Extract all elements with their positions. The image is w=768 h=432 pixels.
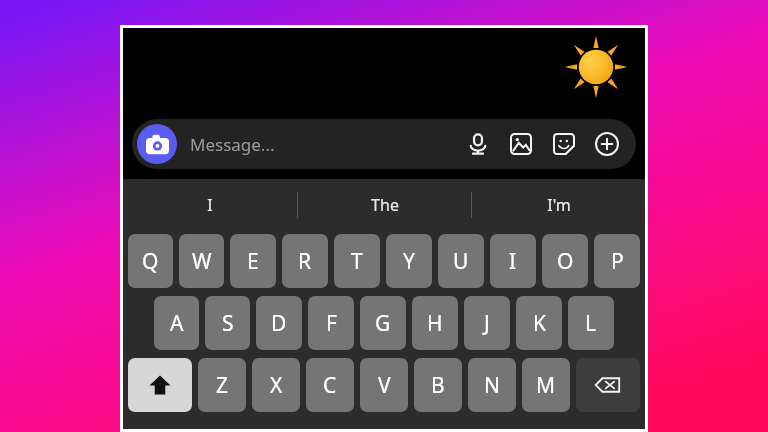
staticText: J [484, 309, 490, 338]
button[interactable]: More options [590, 127, 624, 161]
staticText: F [326, 309, 337, 338]
staticText: H [427, 309, 443, 338]
button[interactable]: Voice message [461, 127, 495, 161]
button[interactable]: Shift [128, 358, 192, 412]
staticText: K [533, 309, 546, 338]
staticText: X [270, 371, 283, 400]
button[interactable]: N [468, 358, 516, 412]
button[interactable]: K [516, 296, 562, 350]
staticText: G [375, 309, 391, 338]
staticText: Z [216, 371, 229, 400]
button[interactable]: Camera [137, 124, 177, 164]
button[interactable]: V [360, 358, 408, 412]
button[interactable]: B [414, 358, 462, 412]
staticText: Message... [190, 133, 275, 156]
button[interactable]: P [594, 234, 640, 288]
button[interactable]: M [522, 358, 570, 412]
staticText: E [247, 247, 259, 276]
button[interactable]: F [308, 296, 354, 350]
button[interactable]: E [230, 234, 276, 288]
staticText: O [557, 247, 574, 276]
button[interactable]: A [154, 296, 199, 350]
staticText: P [611, 247, 624, 276]
staticText: R [298, 247, 312, 276]
button[interactable]: J [464, 296, 510, 350]
button[interactable]: The [298, 179, 471, 230]
button[interactable]: Y [386, 234, 432, 288]
staticText: C [323, 371, 337, 400]
button[interactable]: Backspace [576, 358, 640, 412]
staticText: S [222, 309, 234, 338]
staticText: V [378, 371, 391, 400]
button[interactable]: T [334, 234, 380, 288]
button[interactable]: G [360, 296, 406, 350]
staticText: B [431, 371, 445, 400]
staticText: W [192, 247, 212, 276]
button[interactable]: H [412, 296, 458, 350]
button[interactable]: Stickers [547, 127, 581, 161]
button[interactable]: X [252, 358, 300, 412]
button[interactable]: Z [198, 358, 246, 412]
button[interactable]: L [568, 296, 614, 350]
staticText: The [371, 194, 399, 216]
staticText: I'm [547, 194, 571, 216]
button[interactable]: I [490, 234, 536, 288]
staticText: I [207, 194, 213, 216]
button[interactable]: S [205, 296, 250, 350]
button[interactable]: Camera [132, 119, 636, 169]
staticText: N [484, 371, 500, 400]
button[interactable]: W [179, 234, 224, 288]
button[interactable]: C [306, 358, 354, 412]
button[interactable]: I'm [472, 179, 645, 230]
staticText: T [351, 247, 363, 276]
staticText: A [170, 309, 184, 338]
button[interactable]: Gallery [504, 127, 538, 161]
staticText: Q [142, 247, 159, 276]
staticText: Y [403, 247, 415, 276]
button[interactable]: O [542, 234, 588, 288]
staticText: L [585, 309, 597, 338]
button[interactable]: R [282, 234, 328, 288]
button[interactable]: I [123, 179, 297, 230]
button[interactable]: U [438, 234, 484, 288]
button[interactable]: D [256, 296, 302, 350]
staticText: M [536, 371, 556, 400]
staticText: U [453, 247, 469, 276]
button[interactable]: Q [128, 234, 173, 288]
staticText: D [271, 309, 287, 338]
staticText: I [509, 247, 517, 276]
